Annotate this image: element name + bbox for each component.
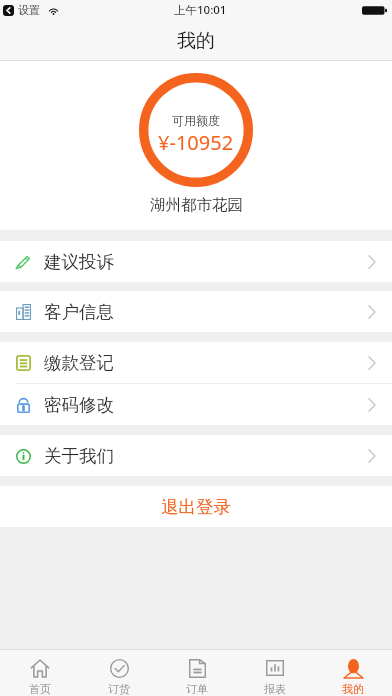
staticText: 退出登录 — [161, 496, 231, 518]
staticText: 关于我们 — [44, 445, 114, 467]
staticText: 密码修改 — [44, 394, 114, 416]
button[interactable]: 订货 — [79, 650, 158, 696]
staticText: 可用额度 — [172, 113, 220, 128]
staticText: 我的 — [177, 29, 215, 53]
staticText: 首页 — [29, 682, 51, 696]
button[interactable]: 我的 — [314, 650, 392, 696]
staticText: 上午10:01 — [174, 2, 227, 18]
staticText: 客户信息 — [44, 301, 114, 323]
button[interactable]: 密码修改 — [0, 384, 392, 425]
button[interactable]: 缴款登记 — [0, 342, 392, 383]
staticText: ¥-10952 — [158, 129, 234, 156]
button[interactable]: 建议投诉 — [0, 241, 392, 282]
staticText: 建议投诉 — [44, 251, 114, 273]
staticText: 我的 — [342, 682, 364, 696]
button[interactable]: 首页 — [0, 650, 79, 696]
staticText: 设置 — [18, 3, 40, 17]
staticText: 订货 — [108, 682, 130, 696]
staticText: 湖州都市花园 — [150, 195, 243, 215]
button[interactable]: 关于我们 — [0, 435, 392, 476]
button[interactable]: 报表 — [236, 650, 314, 696]
button[interactable]: 客户信息 — [0, 291, 392, 332]
staticText: 缴款登记 — [44, 352, 114, 374]
button[interactable]: 退出登录 — [0, 486, 392, 527]
button[interactable]: 订单 — [158, 650, 236, 696]
staticText: 报表 — [264, 682, 286, 696]
staticText: 订单 — [186, 682, 208, 696]
